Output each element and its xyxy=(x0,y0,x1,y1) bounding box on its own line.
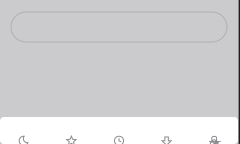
button[interactable]: Downloads xyxy=(143,117,190,144)
button[interactable]: Reading List xyxy=(0,117,48,144)
button[interactable]: Private Browsing xyxy=(190,117,238,144)
button[interactable]: History xyxy=(95,117,143,144)
button[interactable]: Bookmarks xyxy=(48,117,95,144)
